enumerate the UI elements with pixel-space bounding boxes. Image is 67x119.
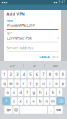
button[interactable]: o (53, 79, 59, 87)
button[interactable]: Next (54, 106, 63, 114)
staticText: g (32, 89, 34, 95)
staticText: t (30, 80, 31, 86)
staticText: x (19, 98, 21, 104)
button[interactable]: a (5, 88, 10, 96)
button[interactable]: r (21, 79, 27, 87)
staticText: 1 (3, 72, 5, 77)
button[interactable]: ↑ (2, 97, 10, 105)
staticText: ▪▪ 9:41 (53, 0, 65, 4)
button[interactable]: d (18, 88, 23, 96)
button[interactable]: c (24, 97, 30, 105)
staticText: ↑ (5, 99, 8, 103)
button[interactable]: m (50, 97, 56, 105)
button[interactable]: l (57, 88, 62, 96)
button[interactable]: LST (23, 62, 44, 70)
staticText: 7 (42, 72, 44, 77)
button[interactable]: v (31, 97, 36, 105)
staticText: u (42, 80, 44, 86)
button[interactable]: CANCEL (39, 55, 49, 59)
button[interactable]: ☺ (13, 106, 19, 114)
button[interactable]: . (48, 106, 54, 114)
staticText: o (55, 80, 57, 86)
button[interactable]: z (11, 97, 17, 105)
staticText: ☺ (14, 108, 18, 112)
staticText: 9 (55, 72, 57, 77)
button[interactable]: 4 (21, 70, 27, 78)
button[interactable]: 1 (1, 70, 7, 78)
button[interactable]: x (18, 97, 23, 105)
button[interactable]: SAVE (52, 55, 58, 59)
button[interactable]: g (31, 88, 36, 96)
staticText: LST (32, 64, 35, 67)
staticText: n (45, 98, 47, 104)
staticText: q (3, 80, 5, 86)
staticText: ▪▪▪ (1, 1, 7, 4)
button[interactable]: Sym (4, 106, 12, 114)
staticText: p (62, 80, 64, 86)
staticText: 2 (10, 72, 12, 77)
staticText: e (16, 80, 18, 86)
staticText: r (23, 80, 25, 86)
button[interactable]: e (14, 79, 20, 87)
button[interactable]: p (60, 79, 66, 87)
staticText: v (32, 98, 34, 104)
staticText: s (13, 89, 15, 95)
staticText: Sym (6, 108, 10, 112)
button[interactable]: 7 (40, 70, 46, 78)
staticText: Next (56, 108, 61, 112)
staticText: CANCEL (39, 55, 49, 59)
staticText: 8 (49, 72, 51, 77)
staticText: 6 (36, 72, 38, 77)
button[interactable]: i (47, 79, 53, 87)
button[interactable]: u (40, 79, 46, 87)
staticText: SAVE (52, 55, 58, 59)
staticText: a (6, 89, 8, 95)
button[interactable]: b (37, 97, 43, 105)
staticText: LSTS (53, 64, 57, 67)
staticText: Add VPN (7, 11, 25, 17)
button[interactable]: n (44, 97, 49, 105)
button[interactable]: f (24, 88, 30, 96)
button[interactable]: w (8, 79, 14, 87)
staticText: 0 (62, 72, 64, 77)
staticText: b (39, 98, 41, 104)
button[interactable]: 0 (60, 70, 66, 78)
button[interactable]: h (37, 88, 43, 96)
button[interactable]: 2 (8, 70, 14, 78)
staticText: j (46, 89, 47, 95)
button[interactable]: j (44, 88, 49, 96)
staticText: L2TP (10, 64, 16, 67)
button[interactable]: LSTS (45, 62, 65, 70)
button[interactable]: t (27, 79, 33, 87)
staticText: ▾ (57, 36, 58, 39)
staticText: c (26, 98, 28, 104)
button[interactable]: s (11, 88, 17, 96)
staticText: k (52, 89, 54, 95)
button[interactable]: 6 (34, 70, 40, 78)
button[interactable]: 8 (47, 70, 53, 78)
staticText: d (19, 89, 21, 95)
staticText: w (9, 80, 12, 86)
staticText: PrivateVPN-L2TP (7, 23, 35, 28)
staticText: 5 (29, 72, 31, 77)
staticText: Name (7, 19, 14, 22)
staticText: f (26, 89, 27, 95)
button[interactable]: q (1, 79, 7, 87)
button[interactable] (20, 106, 47, 114)
staticText: ⌫ (58, 99, 64, 103)
button[interactable]: 9 (53, 70, 59, 78)
staticText: Type (7, 32, 13, 35)
staticText: . (50, 107, 51, 112)
button[interactable]: 3 (14, 70, 20, 78)
staticText: L2TP/IPSec PSK (7, 35, 32, 41)
button[interactable]: L2TP (2, 62, 23, 70)
button[interactable]: 5 (27, 70, 33, 78)
staticText: l (59, 89, 60, 95)
staticText: i (49, 80, 50, 86)
button[interactable]: ⌫ (57, 97, 65, 105)
staticText: Server address (7, 45, 34, 50)
staticText: m (51, 98, 55, 104)
staticText: 3 (16, 72, 18, 77)
button[interactable]: k (50, 88, 56, 96)
button[interactable]: y (34, 79, 40, 87)
